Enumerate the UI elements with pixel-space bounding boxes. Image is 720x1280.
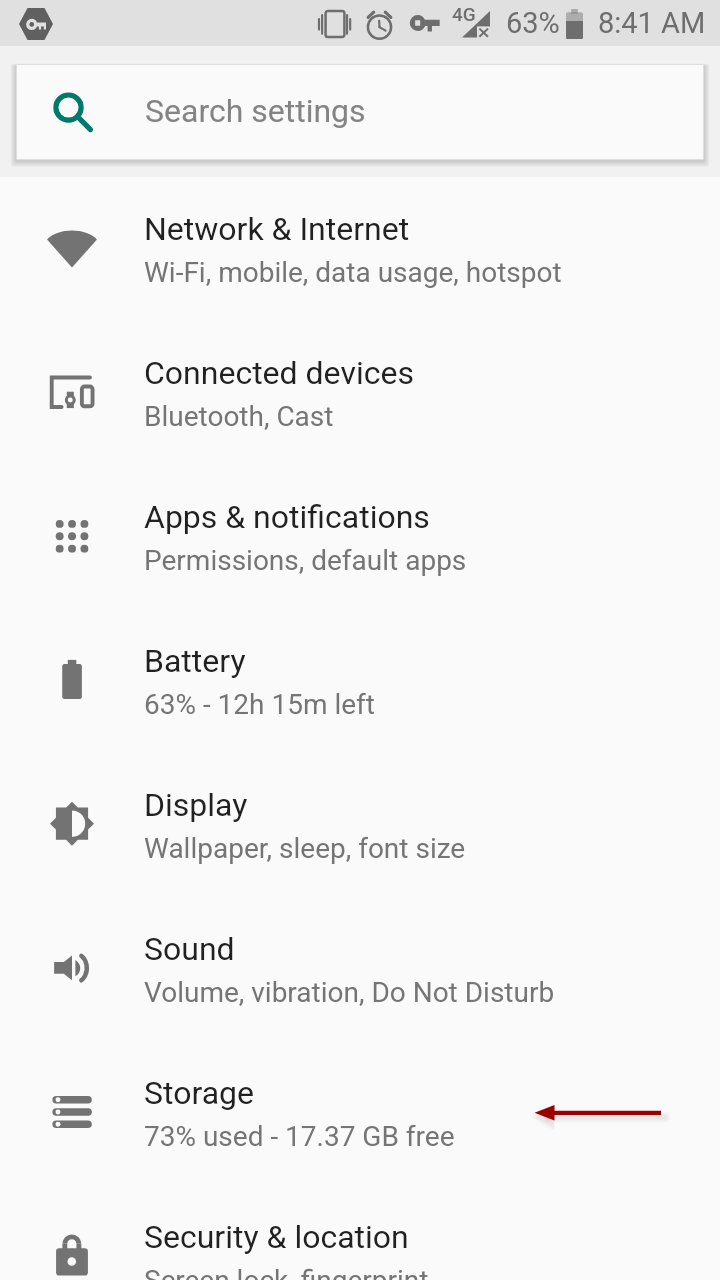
button[interactable]: Security & location <box>0 1185 720 1280</box>
staticText: 4G <box>452 3 476 25</box>
staticText: Permissions, default apps <box>144 544 467 577</box>
staticText: Connected devices <box>144 354 414 392</box>
staticText: Storage <box>144 1074 254 1112</box>
staticText: Battery <box>144 642 246 680</box>
button[interactable]: Apps & notifications <box>0 465 720 609</box>
staticText: 73% used - 17.37 GB free <box>144 1120 455 1153</box>
staticText: Apps & notifications <box>144 498 430 536</box>
button[interactable]: Connected devices <box>0 321 720 465</box>
staticText: 63% <box>506 6 560 40</box>
button[interactable]: Network & Internet <box>0 177 720 321</box>
staticText: Wi-Fi, mobile, data usage, hotspot <box>144 256 562 289</box>
staticText: Sound <box>144 930 235 968</box>
staticText: Wallpaper, sleep, font size <box>144 832 466 865</box>
button[interactable]: Search settings <box>17 65 703 159</box>
staticText: Bluetooth, Cast <box>144 400 334 433</box>
staticText: Security & location <box>144 1218 409 1256</box>
staticText: Volume, vibration, Do Not Disturb <box>144 976 555 1009</box>
other: VPN active <box>19 8 53 40</box>
staticText: 8:41 AM <box>598 6 706 40</box>
staticText: Screen lock, fingerprint <box>144 1264 429 1280</box>
button[interactable]: Battery <box>0 609 720 753</box>
staticText: Search settings <box>145 92 366 130</box>
staticText: Network & Internet <box>144 210 410 248</box>
button[interactable]: Sound <box>0 897 720 1041</box>
staticText: 63% - 12h 15m left <box>144 688 375 721</box>
button[interactable]: Storage <box>0 1041 720 1185</box>
staticText: Display <box>144 786 248 824</box>
button[interactable]: Display <box>0 753 720 897</box>
